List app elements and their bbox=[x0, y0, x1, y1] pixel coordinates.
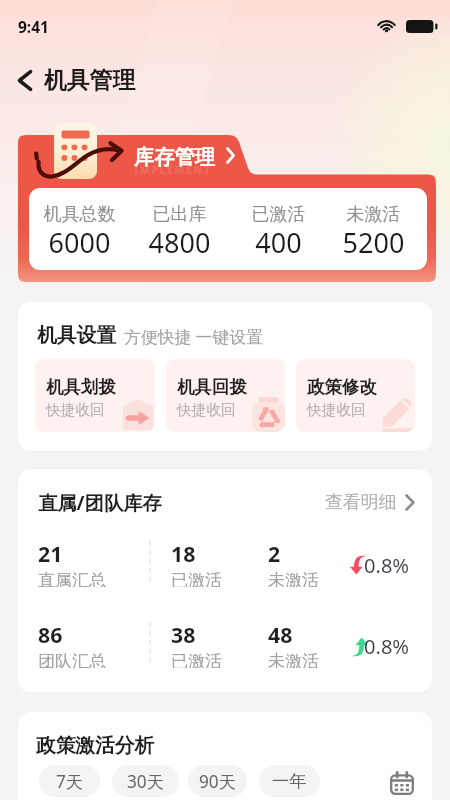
button[interactable]: 一年 bbox=[259, 765, 320, 797]
staticText: 直属/团队库存 bbox=[38, 489, 162, 515]
staticText: 0.8% bbox=[364, 552, 410, 579]
staticText: 直属汇总 bbox=[38, 570, 106, 587]
staticText: 机具划拨 bbox=[46, 376, 116, 398]
staticText: 已出库 bbox=[135, 203, 224, 226]
staticText: IMPLEMENT bbox=[134, 163, 212, 177]
staticText: 库存管理 bbox=[134, 145, 215, 170]
staticText: 快捷收回 bbox=[177, 401, 236, 420]
staticText: 5200 bbox=[329, 224, 418, 261]
staticText: 已激活 bbox=[171, 651, 222, 668]
staticText: 0.8% bbox=[364, 633, 410, 660]
button[interactable]: 7天 bbox=[39, 765, 100, 797]
staticText: 86 bbox=[38, 620, 63, 649]
button[interactable]: Calendar bbox=[388, 769, 416, 797]
staticText: 快捷收回 bbox=[307, 401, 366, 420]
button[interactable]: 机具回拨 bbox=[166, 359, 285, 432]
staticText: 未激活 bbox=[268, 570, 319, 587]
button[interactable]: Back bbox=[7, 58, 42, 102]
button[interactable]: 30天 bbox=[112, 765, 179, 797]
staticText: 400 bbox=[234, 224, 323, 261]
staticText: 方便快捷 一键设置 bbox=[124, 325, 263, 348]
button[interactable]: 机具总数 bbox=[29, 188, 427, 270]
staticText: 90天 bbox=[199, 770, 236, 793]
staticText: 已激活 bbox=[171, 570, 222, 587]
staticText: 机具总数 bbox=[35, 203, 124, 226]
staticText: 已激活 bbox=[234, 203, 323, 226]
staticText: 30天 bbox=[127, 770, 164, 793]
staticText: 查看明细 bbox=[325, 491, 397, 514]
staticText: 机具回拨 bbox=[177, 376, 247, 398]
staticText: 一年 bbox=[272, 770, 307, 792]
staticText: 9:41 bbox=[18, 16, 49, 37]
button[interactable]: 库存管理详情 bbox=[218, 143, 242, 167]
staticText: 7天 bbox=[56, 770, 84, 793]
staticText: 未激活 bbox=[268, 651, 319, 668]
staticText: 18 bbox=[171, 539, 196, 568]
staticText: 团队汇总 bbox=[38, 651, 106, 668]
staticText: 4800 bbox=[135, 224, 224, 261]
staticText: 未激活 bbox=[329, 203, 418, 226]
staticText: 38 bbox=[171, 620, 196, 649]
staticText: 6000 bbox=[35, 224, 124, 261]
staticText: 政策修改 bbox=[307, 376, 377, 398]
staticText: 政策激活分析 bbox=[36, 733, 155, 758]
staticText: 机具设置 bbox=[37, 323, 117, 348]
button[interactable]: 机具划拨 bbox=[35, 359, 155, 432]
staticText: 快捷收回 bbox=[46, 401, 105, 420]
staticText: 48 bbox=[268, 620, 293, 649]
staticText: 机具管理 bbox=[44, 66, 136, 95]
staticText: 21 bbox=[38, 539, 63, 568]
staticText: 2 bbox=[268, 539, 281, 568]
button[interactable]: 政策修改 bbox=[296, 359, 415, 432]
button[interactable]: 90天 bbox=[188, 765, 247, 797]
button[interactable]: 直属/团队库存 bbox=[18, 486, 432, 518]
